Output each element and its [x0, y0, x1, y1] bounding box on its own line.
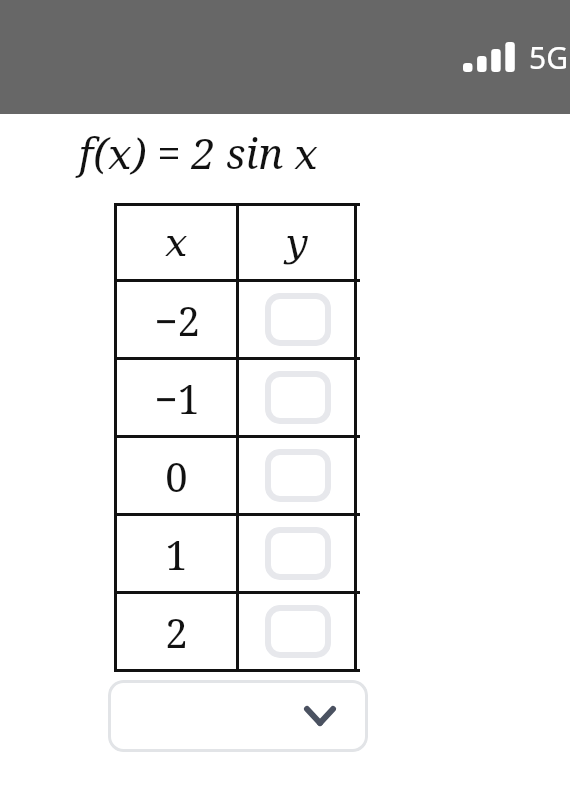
- button[interactable]: Answer field: [265, 293, 331, 346]
- staticText: 0: [165, 449, 188, 503]
- button[interactable]: Answer field: [265, 371, 331, 424]
- button[interactable]: Open dropdown: [108, 680, 368, 752]
- staticText: 1: [165, 527, 188, 581]
- staticText: 5G: [529, 37, 568, 78]
- staticText: 2: [165, 605, 188, 659]
- button[interactable]: Answer field: [265, 605, 331, 658]
- staticText: 𝑦: [285, 219, 308, 266]
- staticText: 𝑥: [165, 219, 188, 266]
- staticText: −1: [154, 371, 200, 425]
- staticText: 𝑓(𝑥) = 2 sin 𝑥: [78, 124, 319, 181]
- staticText: −2: [154, 293, 200, 347]
- button[interactable]: Answer field: [265, 449, 331, 502]
- button[interactable]: Answer field: [265, 527, 331, 580]
